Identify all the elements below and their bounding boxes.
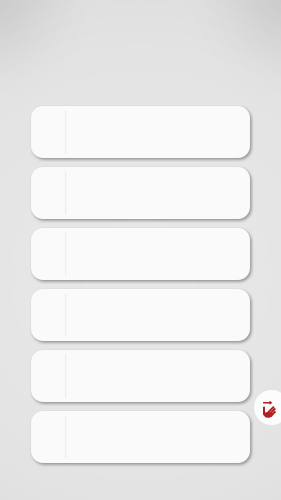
button[interactable] bbox=[31, 289, 250, 341]
button[interactable] bbox=[31, 411, 250, 463]
button[interactable] bbox=[31, 350, 250, 402]
button[interactable] bbox=[31, 228, 250, 280]
button[interactable] bbox=[31, 167, 250, 219]
button[interactable] bbox=[31, 106, 250, 158]
